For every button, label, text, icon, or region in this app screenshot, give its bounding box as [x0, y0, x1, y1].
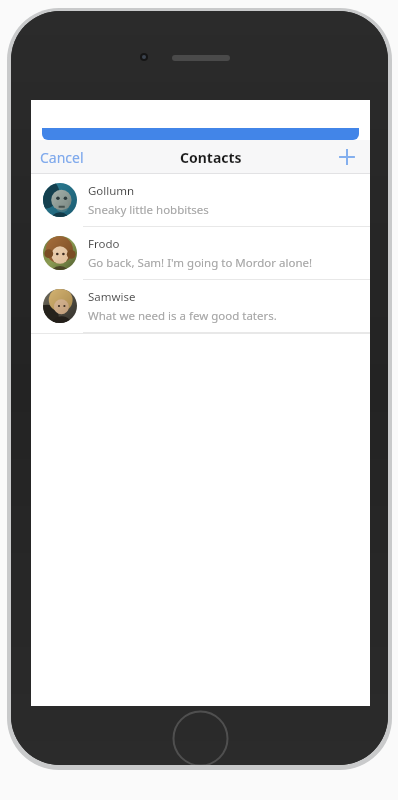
staticText: Sneaky little hobbitses [88, 202, 209, 218]
staticText: Samwise [88, 289, 136, 305]
staticText: Go back, Sam! I'm going to Mordor alone! [88, 255, 313, 271]
staticText: What we need is a few good taters. [88, 308, 277, 324]
button[interactable]: Samwise [31, 280, 370, 333]
button[interactable]: Home [172, 710, 229, 765]
staticText: Gollumn [88, 183, 135, 199]
button[interactable]: Gollumn [31, 174, 370, 227]
staticText: Cancel [40, 148, 84, 167]
staticText: Contacts [180, 148, 242, 167]
staticText: Frodo [88, 236, 120, 252]
button[interactable]: Frodo [31, 227, 370, 280]
button[interactable]: Add contact [334, 144, 360, 170]
button[interactable]: Cancel [36, 144, 88, 171]
